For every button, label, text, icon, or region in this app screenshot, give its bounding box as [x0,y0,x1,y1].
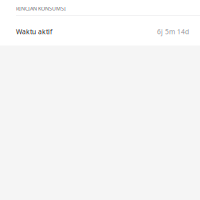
button[interactable]: Waktu aktif [0,17,200,46]
staticText: Waktu aktif [16,27,52,36]
staticText: 6j 5m 14d [157,27,189,36]
staticText: RINCIAN KONSUMSI [16,5,66,12]
